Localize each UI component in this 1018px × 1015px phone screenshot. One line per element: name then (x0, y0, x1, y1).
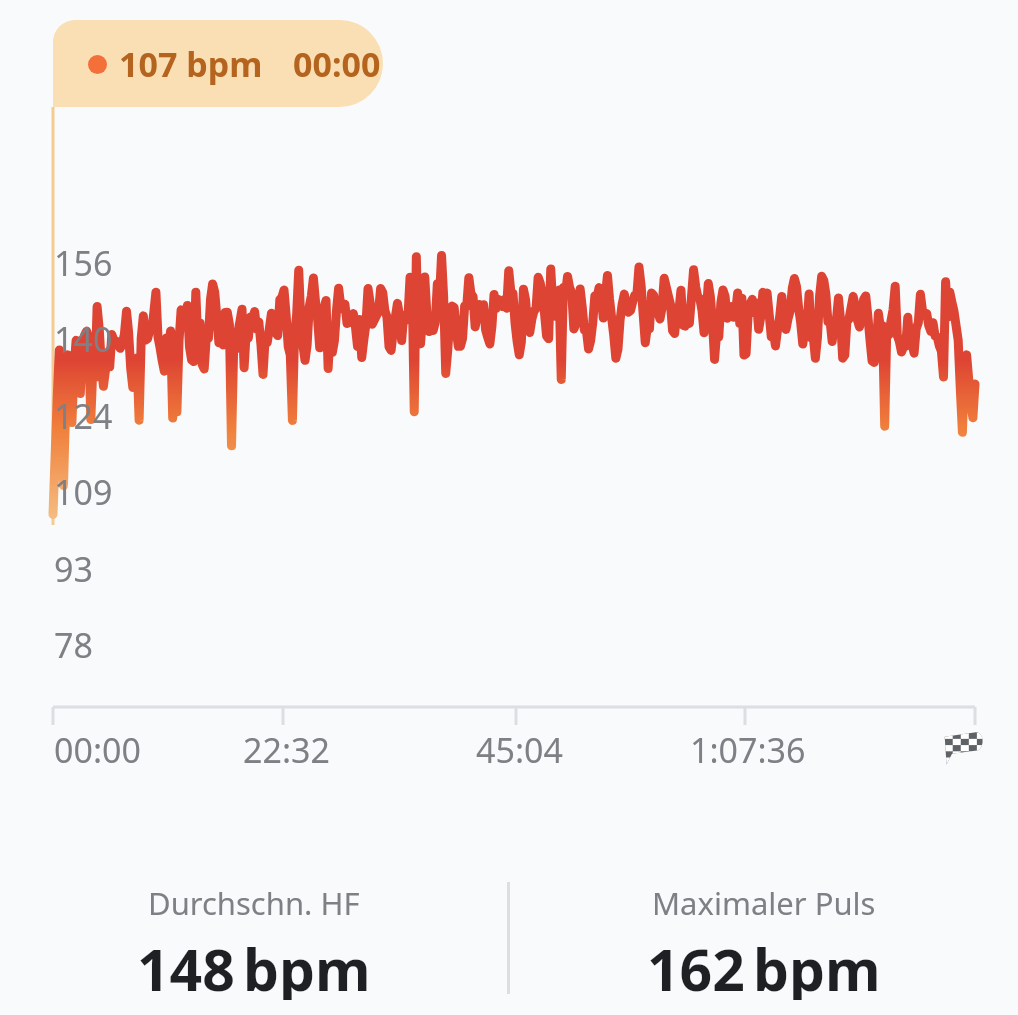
button[interactable]: 107 bpm (53, 20, 383, 107)
staticText: 22:32 (243, 727, 330, 773)
button[interactable]: Durchschn. HF (0, 882, 507, 1000)
staticText: 148 (137, 930, 235, 1000)
staticText: 124 (54, 393, 113, 439)
button[interactable]: Finish (938, 720, 990, 772)
staticText: 78 (54, 622, 93, 668)
staticText: 1:07:36 (690, 727, 806, 773)
staticText: 140 (54, 316, 113, 362)
button[interactable]: Maximaler Puls (510, 882, 1018, 1000)
staticText: bpm (243, 930, 371, 1000)
staticText: 156 (54, 240, 113, 286)
staticText: 162 (647, 930, 745, 1000)
staticText: 93 (54, 546, 93, 592)
staticText: 00:00 (293, 41, 381, 87)
staticText: bpm (753, 930, 881, 1000)
staticText: 45:04 (476, 727, 563, 773)
staticText: 107 bpm (119, 41, 263, 87)
staticText: 109 (54, 469, 113, 515)
staticText: Maximaler Puls (652, 882, 876, 924)
staticText: Durchschn. HF (148, 882, 360, 924)
staticText: 00:00 (54, 727, 141, 773)
